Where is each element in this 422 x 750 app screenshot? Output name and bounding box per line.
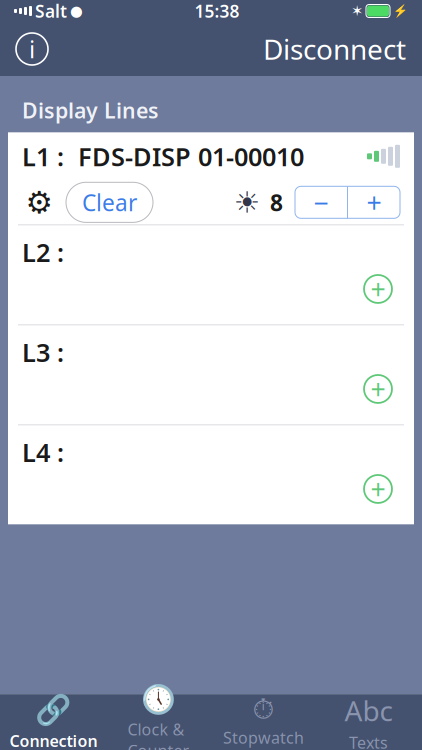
- staticText: Display Lines: [22, 96, 159, 124]
- button[interactable]: ⏱: [211, 695, 316, 750]
- staticText: L3 :: [22, 335, 64, 369]
- staticText: 🕔: [141, 684, 176, 716]
- staticText: ☀: [234, 186, 260, 219]
- staticText: Abc: [344, 692, 392, 729]
- staticText: ●: [70, 3, 83, 19]
- button[interactable]: Settings: [22, 185, 56, 219]
- staticText: Texts: [349, 732, 388, 750]
- staticText: −: [313, 185, 328, 220]
- staticText: Salt: [35, 0, 67, 22]
- button[interactable]: Disconnect: [263, 30, 406, 68]
- staticText: ⚙: [25, 185, 52, 220]
- staticText: Clear: [82, 187, 137, 217]
- button[interactable]: Add L4 : text: [364, 475, 392, 503]
- staticText: +: [370, 371, 385, 407]
- staticText: Clock & Counter: [127, 719, 189, 750]
- button[interactable]: Info: [16, 33, 48, 65]
- button[interactable]: Add L3 : text: [364, 375, 392, 403]
- button[interactable]: Clear: [66, 182, 153, 222]
- staticText: L4 :: [22, 435, 64, 469]
- staticText: Disconnect: [263, 30, 406, 68]
- button[interactable]: Increase brightness: [348, 186, 400, 218]
- staticText: +: [366, 185, 381, 220]
- button[interactable]: Abc: [316, 695, 421, 750]
- staticText: 15:38: [194, 0, 239, 22]
- button[interactable]: Add L2 : text: [364, 275, 392, 303]
- staticText: ✶: [351, 3, 363, 19]
- staticText: i: [29, 33, 35, 65]
- staticText: +: [370, 471, 385, 507]
- staticText: 8: [270, 187, 283, 217]
- staticText: ⏱: [252, 697, 274, 724]
- staticText: ⚡: [393, 4, 408, 18]
- staticText: L1 : FDS-DISP 01-00010: [22, 139, 304, 173]
- button[interactable]: 🔗: [1, 695, 106, 750]
- button[interactable]: 🕔: [106, 695, 211, 750]
- staticText: Connection: [9, 730, 97, 750]
- staticText: 🔗: [35, 694, 72, 727]
- staticText: L2 :: [22, 235, 64, 269]
- staticText: Stopwatch: [223, 727, 304, 748]
- button[interactable]: Decrease brightness: [295, 186, 347, 218]
- staticText: +: [370, 271, 385, 307]
